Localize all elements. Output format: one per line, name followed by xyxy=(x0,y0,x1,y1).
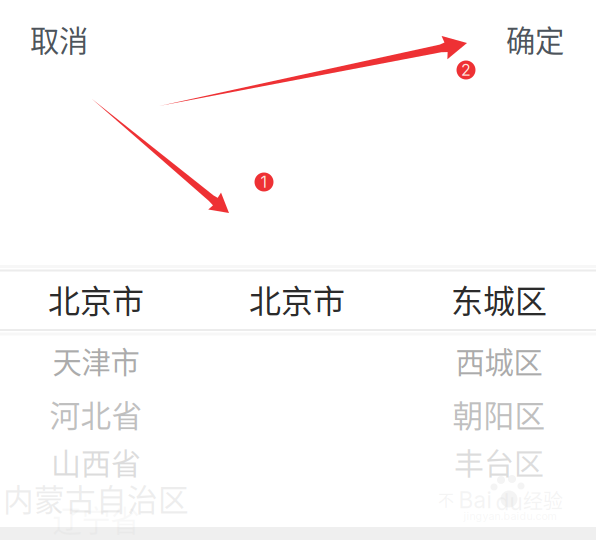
staticText: 确定 xyxy=(506,18,564,60)
staticText: 取消 xyxy=(30,18,88,60)
staticText: 北京市 xyxy=(48,276,144,322)
staticText: 内蒙古自治区 xyxy=(3,476,189,520)
staticText: 西城区 xyxy=(455,339,542,382)
staticText: 天津市 xyxy=(52,339,139,382)
button[interactable]: 确定 xyxy=(454,11,564,67)
staticText: 不 xyxy=(438,487,454,511)
staticText: 2 xyxy=(461,60,471,80)
staticText: 东城区 xyxy=(451,276,547,322)
staticText: 北京市 xyxy=(249,276,345,322)
staticText: du xyxy=(495,488,522,516)
staticText: 经验 xyxy=(523,485,563,514)
staticText: 1 xyxy=(260,172,267,192)
staticText: 山西省 xyxy=(51,440,141,483)
staticText: 辽宁省 xyxy=(52,498,139,540)
button[interactable]: 取消 xyxy=(30,11,140,67)
staticText: 朝阳区 xyxy=(452,392,545,436)
staticText: 河北省 xyxy=(49,392,142,436)
staticText: 丰台区 xyxy=(454,440,544,483)
staticText: Bai xyxy=(458,486,491,514)
